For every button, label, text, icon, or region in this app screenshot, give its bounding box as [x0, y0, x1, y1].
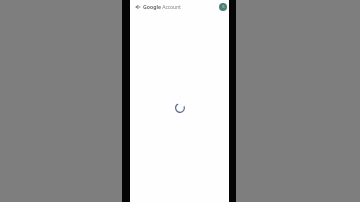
staticText: S — [222, 4, 225, 10]
button[interactable]: Account — [218, 2, 227, 11]
button[interactable]: Back — [133, 2, 142, 11]
staticText: Google Account — [143, 3, 181, 10]
